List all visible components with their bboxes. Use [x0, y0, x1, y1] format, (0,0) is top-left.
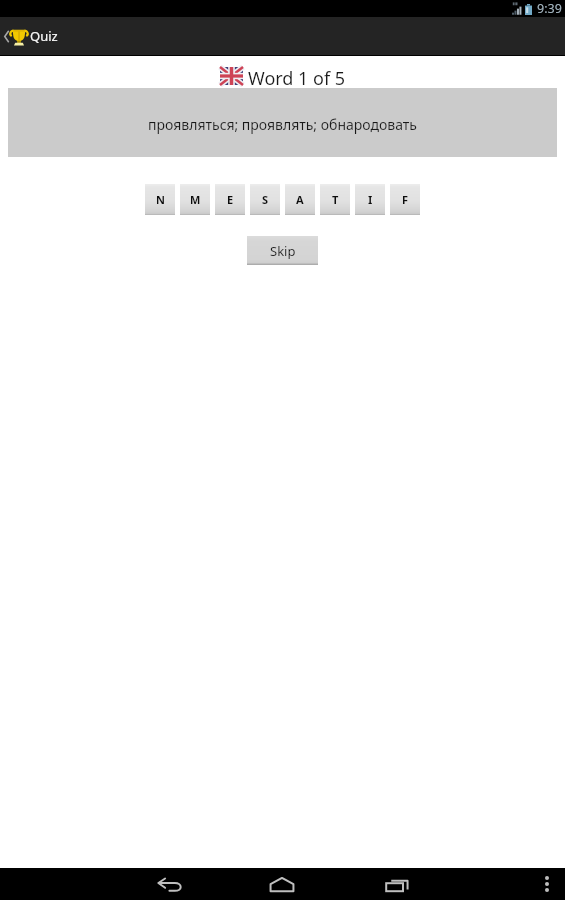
button[interactable]: I — [355, 184, 385, 215]
staticText: Skip — [270, 242, 296, 260]
button[interactable]: Skip — [247, 236, 318, 265]
staticText: A — [296, 192, 304, 207]
button[interactable]: Navigate up — [0, 22, 30, 51]
button[interactable]: Home — [246, 868, 318, 900]
staticText: T — [332, 192, 339, 207]
button[interactable]: T — [320, 184, 350, 215]
staticText: 9:39 — [537, 0, 562, 17]
staticText: Quiz — [30, 27, 58, 45]
staticText: проявляться; проявлять; обнародовать — [148, 115, 417, 134]
button[interactable]: E — [215, 184, 245, 215]
button[interactable]: Recent apps — [361, 868, 433, 900]
staticText: M — [190, 192, 201, 207]
button[interactable]: M — [180, 184, 210, 215]
staticText: Word 1 of 5 — [248, 66, 346, 86]
button[interactable]: N — [145, 184, 175, 215]
button[interactable]: F — [390, 184, 420, 215]
button[interactable]: More options — [529, 868, 564, 900]
button[interactable]: Back — [134, 868, 206, 900]
staticText: E — [227, 192, 234, 207]
staticText: I — [368, 192, 373, 207]
button[interactable]: S — [250, 184, 280, 215]
button[interactable]: A — [285, 184, 315, 215]
staticText: F — [402, 192, 409, 207]
staticText: N — [156, 192, 165, 207]
staticText: S — [262, 192, 269, 207]
